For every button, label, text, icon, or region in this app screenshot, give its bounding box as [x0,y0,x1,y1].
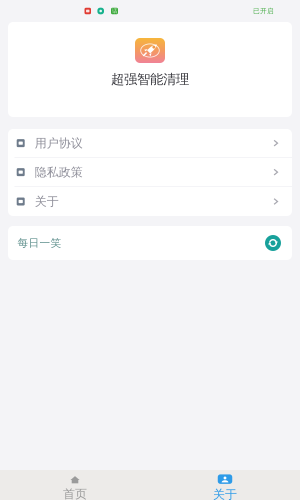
staticText: 超强智能清理 [111,71,189,87]
button[interactable]: 用户协议 [8,129,292,158]
staticText: 隐私政策 [35,165,83,179]
button[interactable]: 关于 [8,187,292,216]
button[interactable]: 关于 [150,470,300,500]
staticText: 关于 [35,194,59,209]
button[interactable]: 首页 [0,470,150,500]
staticText: 已开启 [253,7,274,15]
staticText: 用户协议 [35,136,83,150]
button[interactable]: 每日一笑 [0,226,300,260]
staticText: 话 [112,8,117,14]
staticText: 每日一笑 [17,236,61,249]
button[interactable]: 隐私政策 [8,158,292,187]
staticText: 关于 [213,487,237,500]
staticText: 首页 [63,487,87,500]
